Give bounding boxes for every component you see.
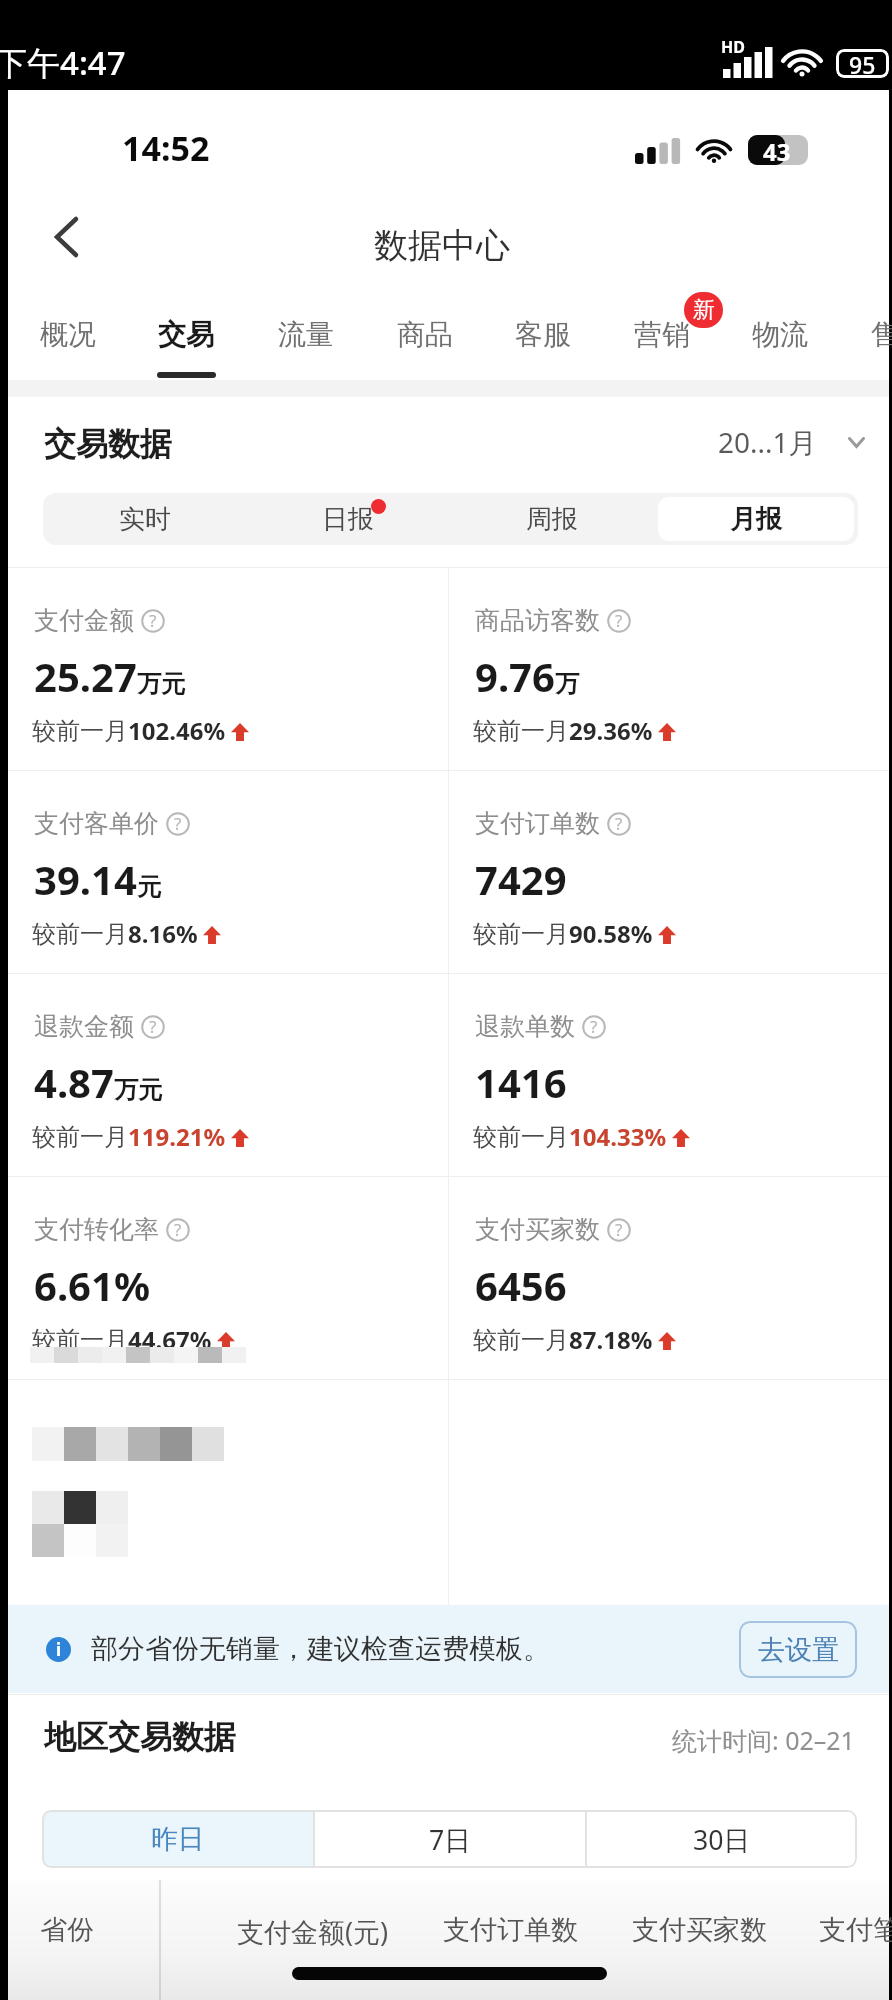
button[interactable]: 支付转化率 [8,1177,448,1379]
staticText: 20...1月 [718,423,817,461]
staticText: 支付客单价 [34,808,159,839]
button[interactable]: 支付买家数 [449,1177,889,1379]
staticText: 6.61% [34,1258,150,1312]
staticText: 元 [137,872,161,902]
button[interactable]: 7日 [315,1810,585,1868]
staticText: 较前一月 [473,919,569,949]
staticText: 物流 [752,317,808,352]
staticText: 支付订单数 [475,808,600,839]
staticText: 9.76 [475,649,555,703]
staticText: ? [149,1015,157,1038]
button[interactable]: 物流 [724,298,836,370]
staticText: ? [615,812,623,835]
staticText: 支付买家数 [475,1214,600,1245]
staticText: 省份 [40,1913,94,1947]
button[interactable]: 客服 [487,298,599,370]
staticText: 客服 [515,317,571,352]
staticText: 流量 [278,317,334,352]
staticText: 较前一月 [473,1325,569,1355]
staticText: 4.87 [34,1055,114,1109]
staticText: ? [174,812,182,835]
staticText: 概况 [40,317,96,352]
staticText: 95 [849,49,876,78]
staticText: 39.14 [34,852,137,906]
staticText: 6456 [475,1258,567,1312]
button[interactable]: 实时 [47,497,242,541]
staticText: 较前一月 [32,1325,128,1355]
staticText: 万 [555,669,579,699]
button[interactable]: 日报 [250,497,446,541]
staticText: 营销 [634,317,690,352]
staticText: ? [615,1218,623,1241]
button[interactable]: 支付金额 [8,568,448,770]
button[interactable]: 营销 [606,298,718,370]
button[interactable]: 20...1月 [718,423,865,461]
staticText: 交易 [158,317,214,352]
button[interactable]: 商品 [369,298,481,370]
staticText: 102.46% [128,714,226,747]
button[interactable]: 30日 [587,1810,857,1868]
staticText: 较前一月 [473,716,569,746]
button[interactable]: 去设置 [739,1621,857,1678]
staticText: 商品访客数 [475,605,600,636]
button[interactable]: 周报 [454,497,650,541]
staticText: 部分省份无销量，建议检查运费模板。 [91,1632,550,1666]
staticText: 日报 [322,503,374,536]
button[interactable]: 月报 [658,497,854,541]
staticText: 支付买家数 [632,1913,767,1947]
staticText: 44.67% [128,1323,212,1356]
button[interactable]: 流量 [250,298,362,370]
button[interactable]: 支付订单数 [449,771,889,973]
button[interactable]: 支付客单价 [8,771,448,973]
staticText: 交易数据 [44,424,172,464]
staticText: 支付金额(元) [237,1913,389,1950]
staticText: ? [174,1218,182,1241]
staticText: ? [590,1015,598,1038]
staticText: 下午4:47 [0,40,126,85]
staticText: 支付订单数 [443,1913,578,1947]
staticText: 90.58% [569,917,653,950]
staticText: 退款金额 [34,1011,134,1042]
staticText: 实时 [119,503,171,536]
button[interactable]: 售 [844,298,892,370]
staticText: ? [149,609,157,632]
staticText: 新 [693,296,715,324]
staticText: 29.36% [569,714,653,747]
staticText: 万元 [137,669,185,699]
staticText: 售 [871,317,892,352]
staticText: 月报 [730,503,782,536]
staticText: 8.16% [128,917,198,950]
staticText: i [56,1638,62,1661]
staticText: 1416 [475,1055,567,1109]
staticText: ? [615,609,623,632]
staticText: 地区交易数据 [44,1717,236,1757]
staticText: 商品 [397,317,453,352]
staticText: 25.27 [34,649,137,703]
staticText: 较前一月 [32,919,128,949]
staticText: 119.21% [128,1120,226,1153]
staticText: 7日 [429,1821,471,1857]
staticText: 43 [763,135,791,165]
button[interactable]: Back [35,206,97,268]
button[interactable]: 退款单数 [449,974,889,1176]
button[interactable]: 概况 [12,298,124,370]
button[interactable]: 商品访客数 [449,568,889,770]
staticText: 30日 [693,1821,751,1857]
staticText: 较前一月 [32,716,128,746]
staticText: 昨日 [151,1822,205,1856]
staticText: 7429 [475,852,567,906]
staticText: 支付金额 [34,605,134,636]
staticText: 支付转化率 [34,1214,159,1245]
staticText: 较前一月 [473,1122,569,1152]
staticText: 去设置 [758,1633,839,1667]
staticText: 数据中心 [374,224,510,267]
staticText: 统计时间: 02–21 [672,1723,855,1757]
button[interactable]: 交易 [130,298,242,370]
staticText: HD [721,36,745,58]
staticText: 万元 [114,1075,162,1105]
button[interactable]: 昨日 [42,1810,313,1868]
staticText: 周报 [526,503,578,536]
button[interactable]: 退款金额 [8,974,448,1176]
staticText: 14:52 [122,125,210,171]
staticText: 较前一月 [32,1122,128,1152]
